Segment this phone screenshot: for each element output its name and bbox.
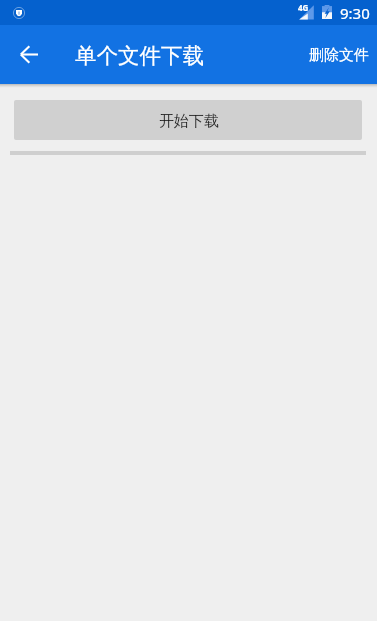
button[interactable]: Back bbox=[0, 25, 57, 84]
button[interactable]: 删除文件 bbox=[301, 25, 377, 84]
button[interactable]: 开始下载 bbox=[14, 100, 362, 140]
staticText: 9:30 bbox=[340, 3, 370, 23]
staticText: 4G bbox=[298, 2, 309, 13]
staticText: 删除文件 bbox=[309, 46, 369, 65]
staticText: 单个文件下载 bbox=[75, 42, 204, 69]
staticText: 开始下载 bbox=[159, 112, 219, 131]
